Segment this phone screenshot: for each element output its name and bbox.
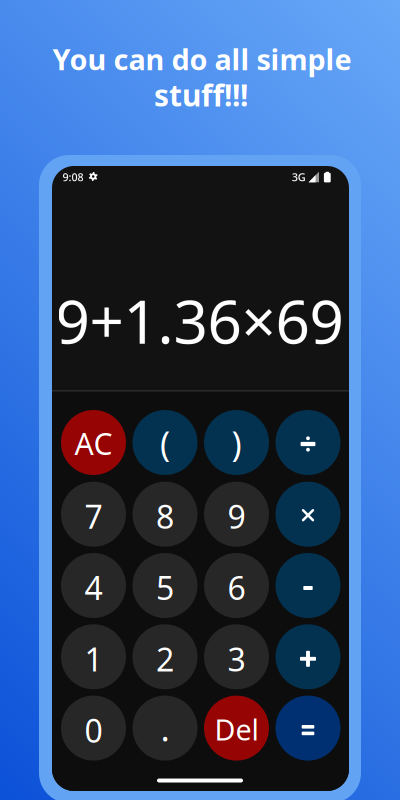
staticText: 9+1.36×69 [55, 279, 343, 361]
staticText: 9 [227, 495, 245, 538]
button[interactable]: Close parenthesis [204, 410, 269, 475]
button[interactable]: Minus [275, 553, 340, 618]
staticText: stuff!!! [154, 75, 248, 115]
button[interactable]: 7 [61, 482, 126, 547]
staticText: 8 [156, 495, 174, 538]
button[interactable]: AC [61, 410, 126, 475]
button[interactable]: 8 [132, 482, 197, 547]
staticText: ) [231, 420, 241, 466]
staticText: . [160, 704, 169, 752]
button[interactable]: 9 [204, 482, 269, 547]
staticText: 9:08 [62, 170, 83, 184]
staticText: Del [214, 710, 258, 749]
button[interactable]: Del [204, 696, 269, 761]
button[interactable]: Divide [275, 410, 340, 475]
staticText: ( [160, 420, 170, 466]
staticText: 2 [156, 637, 174, 681]
staticText: 3 [227, 637, 245, 681]
staticText: 5 [156, 566, 174, 609]
button[interactable]: Equals [275, 696, 340, 761]
staticText: 4 [84, 566, 102, 609]
button[interactable]: 6 [204, 553, 269, 618]
button[interactable]: 5 [132, 553, 197, 618]
staticText: You can do all simple [52, 39, 351, 79]
staticText: AC [74, 423, 112, 464]
staticText: 1 [84, 637, 102, 681]
staticText: 6 [227, 566, 245, 609]
staticText: 0 [84, 708, 102, 752]
staticText: 7 [84, 495, 102, 538]
button[interactable]: 3 [204, 624, 269, 689]
button[interactable]: 0 [61, 696, 126, 761]
staticText: 3G [292, 170, 306, 184]
button[interactable]: Open parenthesis [132, 410, 197, 475]
button[interactable]: 1 [61, 624, 126, 689]
button[interactable]: 2 [132, 624, 197, 689]
button[interactable]: Multiply [275, 482, 340, 547]
button[interactable]: Plus [275, 624, 340, 689]
button[interactable]: 4 [61, 553, 126, 618]
button[interactable]: Decimal point [132, 696, 197, 761]
